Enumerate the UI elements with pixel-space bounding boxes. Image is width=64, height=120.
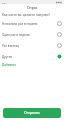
button[interactable]: Один раз в неделю <box>0 29 64 40</box>
staticText: Как часто вы делаете покупки? <box>2 13 50 17</box>
staticText: Отправить <box>24 111 40 115</box>
button[interactable]: Раз в месяц <box>0 40 64 51</box>
button[interactable]: Отправить <box>3 108 61 118</box>
staticText: Один раз в неделю <box>2 33 30 37</box>
staticText: Добавить <box>2 63 17 67</box>
button[interactable]: Другое <box>0 51 64 62</box>
staticText: Несколько раз в неделю <box>2 22 38 26</box>
button[interactable]: Несколько раз в неделю <box>0 18 64 29</box>
staticText: 9:41 <box>2 1 7 4</box>
staticText: Опрос <box>27 5 38 10</box>
staticText: Раз в месяц <box>2 44 20 48</box>
staticText: Другое <box>2 55 13 59</box>
button[interactable]: Добавить <box>0 63 19 67</box>
